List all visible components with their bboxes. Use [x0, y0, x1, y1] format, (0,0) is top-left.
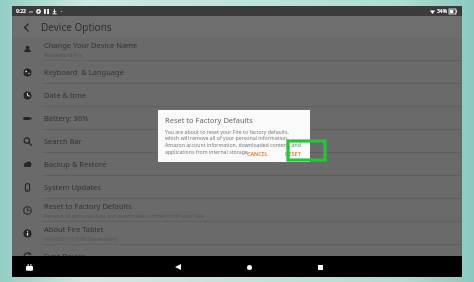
button[interactable]: Backup & Restore: [12, 153, 462, 176]
button[interactable]: About Fire Tablet: [12, 222, 462, 245]
button[interactable]: Home: [241, 259, 257, 275]
button[interactable]: RESET: [279, 147, 307, 160]
button[interactable]: System Updates: [12, 176, 462, 199]
button[interactable]: Back: [170, 259, 186, 275]
staticText: You are about to reset your Fire to fact…: [165, 128, 303, 156]
button[interactable]: Change Your Device Name: [12, 38, 462, 61]
button[interactable]: Search Bar: [12, 130, 462, 153]
staticText: Reset to Factory Defaults: [44, 201, 132, 211]
staticText: About Fire Tablet: [44, 224, 104, 234]
staticText: Alexander's Fire: [44, 51, 83, 58]
staticText: Change Your Device Name: [44, 40, 138, 50]
staticText: Sync Device: [44, 251, 86, 261]
staticText: Keyboard & Language: [44, 67, 124, 77]
button[interactable]: Back: [19, 20, 33, 34]
staticText: Reset to Factory Defaults: [165, 115, 253, 125]
button[interactable]: Keyboard & Language: [12, 61, 462, 84]
button[interactable]: Reset to Factory Defaults: [12, 199, 462, 222]
button[interactable]: Screenshot: [22, 260, 36, 274]
button[interactable]: Sync Device: [12, 245, 462, 268]
button[interactable]: CANCEL: [243, 147, 272, 160]
staticText: Search Bar: [44, 136, 82, 146]
button[interactable]: Battery: 36%: [12, 107, 462, 130]
staticText: Battery: 36%: [44, 113, 89, 123]
staticText: Device Options: [41, 20, 112, 34]
staticText: 34%: [437, 8, 447, 15]
staticText: System Updates: [44, 182, 101, 192]
button[interactable]: Recent apps: [312, 259, 328, 275]
staticText: Date & time: [44, 90, 86, 100]
staticText: RESET: [285, 150, 301, 157]
staticText: Backup & Restore: [44, 159, 107, 169]
staticText: CANCEL: [247, 150, 268, 157]
button[interactable]: Date & time: [12, 84, 462, 107]
staticText: Fire HD8 (11/13th Generation): [44, 235, 117, 242]
staticText: 9:22: [16, 8, 26, 15]
staticText: Remove all personal data and downloaded …: [44, 212, 206, 219]
